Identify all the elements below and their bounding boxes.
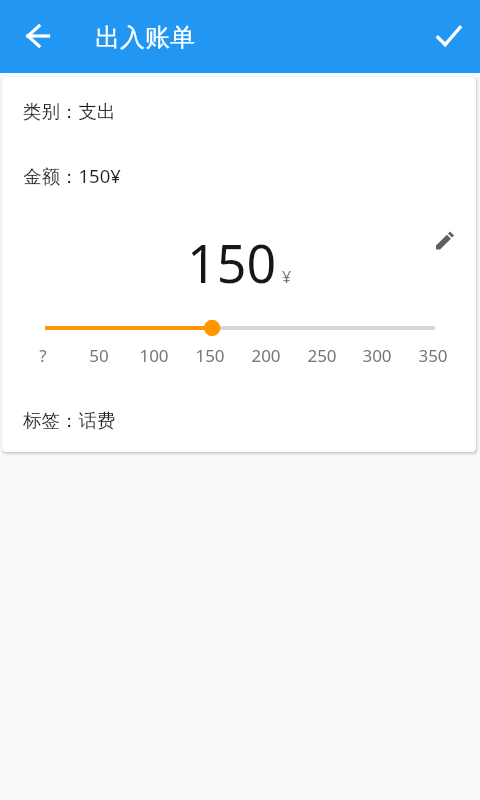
staticText: 100 — [139, 344, 169, 366]
staticText: 350 — [418, 344, 448, 366]
button[interactable]: Edit amount — [430, 226, 460, 256]
button[interactable]: Back — [12, 8, 68, 64]
button[interactable]: 标签：话费 — [2, 396, 476, 442]
staticText: 标签：话费 — [23, 409, 116, 432]
staticText: ¥ — [282, 266, 292, 288]
button[interactable]: 金额：150¥ — [2, 150, 476, 196]
staticText: 出入账单 — [95, 22, 195, 53]
button[interactable]: 类别：支出 — [2, 87, 476, 133]
staticText: 类别：支出 — [23, 100, 116, 123]
staticText: 150 — [195, 344, 225, 366]
staticText: 200 — [251, 344, 281, 366]
button[interactable]: Amount slider, 150 — [2, 313, 476, 345]
staticText: 300 — [362, 344, 392, 366]
staticText: 50 — [89, 344, 109, 366]
staticText: ? — [39, 344, 47, 366]
staticText: 150 — [187, 227, 277, 298]
staticText: 250 — [307, 344, 337, 366]
button[interactable]: Save — [422, 8, 478, 64]
staticText: 金额：150¥ — [23, 163, 121, 188]
